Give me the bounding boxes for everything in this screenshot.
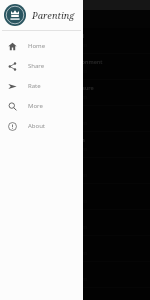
staticText: Create a Positive Home Environment — [6, 58, 103, 65]
staticText: Helpful parenting advice and ideas — [6, 146, 88, 153]
button[interactable]: Teaching Empathy to Children — [0, 132, 150, 157]
button[interactable]: Rate — [0, 76, 83, 96]
staticText: Helpful parenting advice and ideas — [6, 250, 88, 257]
button[interactable]: Teaching Responsibility — [0, 210, 150, 235]
staticText: Home — [28, 42, 46, 50]
button[interactable]: Dealing with Sibling Rivalry — [0, 106, 150, 131]
staticText: Helping Kids Resist Peer Pressure — [6, 84, 94, 91]
staticText: Parenting Tips — [32, 9, 83, 21]
button[interactable]: Building Trust with Children — [0, 158, 150, 183]
button[interactable]: Emotional Development — [0, 236, 150, 261]
staticText: Helpful parenting advice and ideas — [6, 42, 88, 49]
staticText: Helpful parenting advice and ideas — [6, 224, 88, 231]
staticText: Teaching Empathy to Children — [6, 136, 85, 143]
button[interactable]: Helping Kids Resist Peer Pressure — [0, 80, 150, 105]
staticText: Rate — [28, 82, 41, 90]
staticText: Helpful parenting advice and ideas — [6, 276, 88, 283]
staticText: Helpful parenting advice and ideas — [6, 172, 88, 179]
button[interactable]: Share — [0, 56, 83, 76]
button[interactable]: More — [0, 96, 83, 116]
staticText: Helpful parenting advice and ideas — [6, 120, 88, 127]
button[interactable]: Nature and Outdoor Play — [0, 262, 150, 287]
button[interactable]: Positive Behavior — [0, 288, 150, 300]
staticText: Helpful parenting advice and ideas — [6, 68, 88, 75]
button[interactable]: Encouraging Imagination — [0, 184, 150, 209]
button[interactable]: Home — [0, 36, 83, 56]
staticText: More — [28, 102, 43, 110]
staticText: Helpful parenting advice and ideas — [6, 198, 88, 205]
staticText: Communicate with Your Child — [6, 32, 84, 39]
button[interactable]: Parenting Tips — [0, 0, 83, 30]
staticText: Share — [28, 62, 45, 70]
staticText: Helpful parenting advice and ideas — [6, 94, 88, 101]
staticText: About — [28, 122, 46, 130]
button[interactable]: Create a Positive Home Environment — [0, 54, 150, 79]
button[interactable]: About — [0, 116, 83, 136]
button[interactable]: Communicate with Your Child — [0, 28, 150, 53]
